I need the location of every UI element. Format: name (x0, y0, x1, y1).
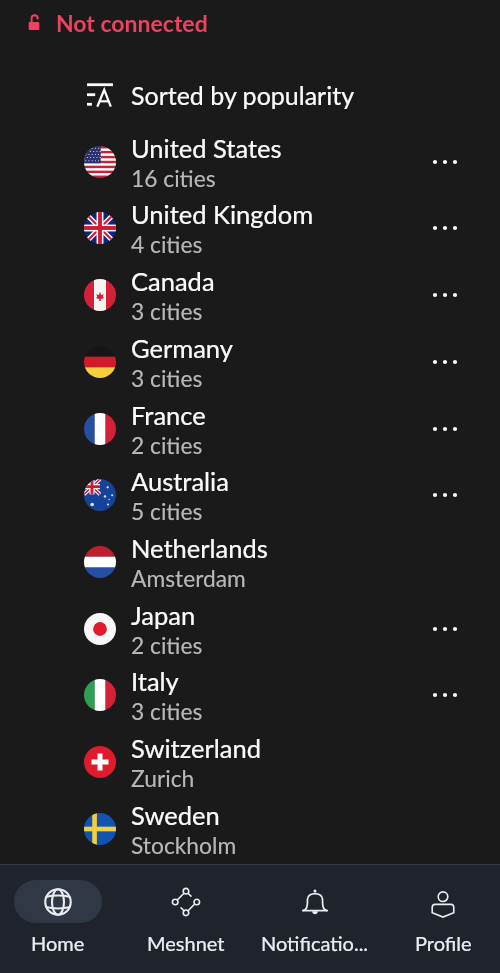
button[interactable]: More options (389, 261, 500, 328)
button[interactable]: Germany (0, 328, 500, 395)
staticText: 5 cities (131, 497, 203, 524)
button[interactable]: More options (389, 128, 500, 195)
staticText: France (131, 400, 206, 431)
button[interactable]: Australia (0, 462, 500, 528)
button[interactable]: United States (0, 128, 500, 195)
button[interactable]: Japan (0, 595, 500, 662)
staticText: Not connected (56, 9, 208, 37)
staticText: 3 cities (131, 364, 203, 391)
button[interactable]: Profile (388, 880, 498, 955)
button[interactable]: Home (3, 880, 113, 955)
button[interactable]: More options (389, 462, 500, 528)
staticText: Japan (131, 600, 196, 631)
button[interactable]: Not connected (0, 0, 500, 61)
staticText: Sorted by popularity (131, 80, 355, 110)
button[interactable]: More options (389, 395, 500, 462)
staticText: Switzerland (131, 733, 261, 764)
staticText: 3 cities (131, 297, 203, 324)
button[interactable]: United Kingdom (0, 195, 500, 261)
button[interactable]: Notificatio... (260, 880, 370, 955)
staticText: Home (31, 931, 85, 955)
button[interactable]: More options (389, 595, 500, 662)
button[interactable]: Canada (0, 261, 500, 328)
button[interactable]: More options (389, 662, 500, 728)
button[interactable]: Meshnet (131, 880, 241, 955)
button[interactable]: France (0, 395, 500, 462)
button[interactable]: Switzerland (0, 728, 500, 795)
button[interactable]: Netherlands (0, 528, 500, 595)
button[interactable]: Sorted by popularity (0, 61, 500, 128)
staticText: Canada (131, 266, 215, 297)
button[interactable]: Italy (0, 662, 500, 728)
staticText: Amsterdam (131, 564, 246, 591)
staticText: 4 cities (131, 230, 203, 257)
button[interactable]: Sweden (0, 795, 500, 862)
staticText: Italy (131, 666, 179, 697)
staticText: Sweden (131, 800, 220, 831)
staticText: 2 cities (131, 431, 203, 458)
staticText: 16 cities (131, 164, 216, 191)
button[interactable]: More options (389, 328, 500, 395)
staticText: Stockholm (131, 831, 237, 858)
staticText: Notificatio... (261, 931, 369, 955)
staticText: United Kingdom (131, 199, 314, 230)
button[interactable]: More options (389, 195, 500, 261)
staticText: Profile (415, 931, 472, 955)
staticText: Meshnet (147, 931, 225, 955)
staticText: Germany (131, 333, 233, 364)
staticText: United States (131, 133, 282, 164)
staticText: 2 cities (131, 631, 203, 658)
staticText: Netherlands (131, 533, 268, 564)
staticText: Zurich (131, 764, 195, 791)
staticText: 3 cities (131, 697, 203, 724)
staticText: Australia (131, 466, 229, 497)
